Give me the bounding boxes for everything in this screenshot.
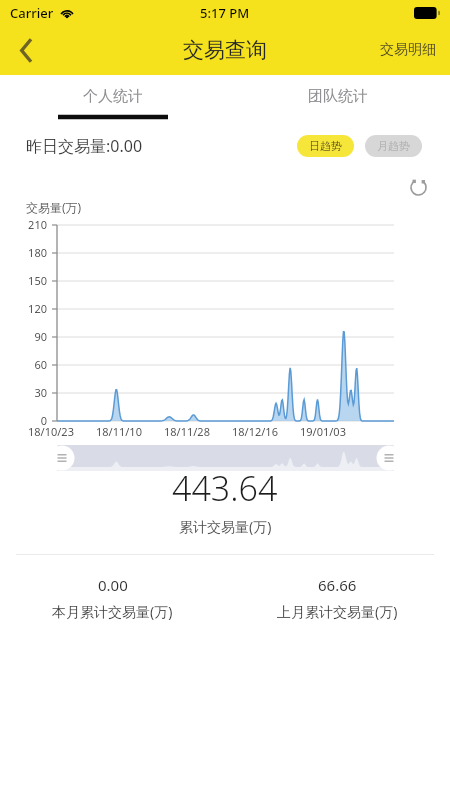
staticText: 180	[1, 245, 47, 260]
staticText: 18/12/16	[232, 424, 278, 439]
staticText: 交易明细	[380, 41, 436, 59]
staticText: 66.66	[318, 575, 357, 595]
staticText: 5:17 PM	[200, 4, 250, 22]
staticText: 150	[1, 273, 47, 288]
button[interactable]: 个人统计	[0, 75, 225, 123]
staticText: 交易查询	[183, 37, 267, 63]
staticText: 个人统计	[83, 87, 143, 106]
staticText: 0.00	[98, 575, 128, 595]
button[interactable]: 团队统计	[225, 75, 450, 123]
staticText: 日趋势	[309, 139, 342, 153]
staticText: 月趋势	[377, 139, 410, 153]
staticText: 443.64	[172, 465, 278, 511]
staticText: 上月累计交易量(万)	[277, 602, 398, 621]
button[interactable]: 交易明细	[366, 31, 450, 69]
staticText: 昨日交易量:0.00	[26, 135, 143, 157]
button[interactable]: 0.00	[0, 571, 225, 625]
button[interactable]: Back	[0, 25, 52, 75]
staticText: 累计交易量(万)	[179, 517, 272, 536]
button[interactable]: 日趋势	[297, 135, 354, 157]
staticText: 60	[1, 357, 47, 372]
staticText: 18/11/28	[164, 424, 210, 439]
button[interactable]: 月趋势	[365, 135, 422, 157]
staticText: Carrier	[10, 4, 54, 22]
staticText: 30	[1, 385, 47, 400]
button[interactable]: Refresh	[404, 173, 432, 201]
staticText: 18/10/23	[28, 424, 74, 439]
staticText: 交易量(万)	[26, 199, 82, 215]
staticText: 团队统计	[308, 87, 368, 106]
staticText: 120	[1, 301, 47, 316]
button[interactable]: 66.66	[225, 571, 450, 625]
staticText: 90	[1, 329, 47, 344]
staticText: 210	[1, 217, 47, 232]
staticText: 19/01/03	[300, 424, 346, 439]
staticText: 本月累计交易量(万)	[52, 602, 173, 621]
staticText: 0	[1, 413, 47, 428]
staticText: 18/11/10	[96, 424, 142, 439]
